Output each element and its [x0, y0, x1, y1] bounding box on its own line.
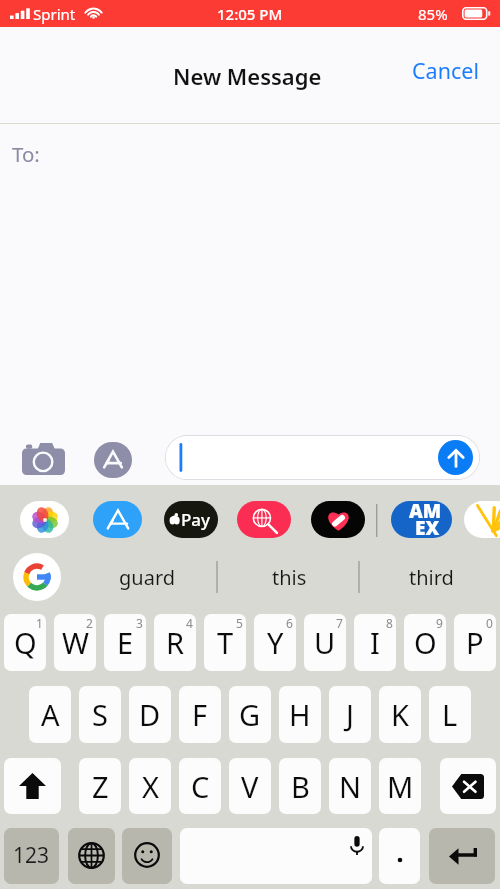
- staticText: E: [117, 623, 134, 662]
- staticText: guard: [119, 564, 176, 591]
- staticText: 8: [386, 615, 393, 631]
- button[interactable]: Send: [438, 440, 473, 475]
- button[interactable]: Next keyboard: [68, 828, 115, 884]
- button[interactable]: Backspace: [440, 758, 496, 814]
- button[interactable]: Cancel: [392, 49, 500, 95]
- staticText: 7: [336, 615, 343, 631]
- button[interactable]: L: [429, 686, 471, 743]
- button[interactable]: U: [304, 614, 346, 671]
- staticText: Q: [14, 623, 37, 662]
- button[interactable]: M: [379, 758, 421, 814]
- button[interactable]: K: [379, 686, 421, 743]
- button[interactable]: P: [454, 614, 496, 671]
- staticText: 4: [186, 615, 193, 631]
- staticText: 123: [13, 841, 50, 870]
- button[interactable]: Z: [79, 758, 121, 814]
- button[interactable]: G: [229, 686, 271, 743]
- button[interactable]: Take photo: [13, 435, 75, 480]
- staticText: EX: [415, 515, 440, 541]
- button[interactable]: I: [354, 614, 396, 671]
- staticText: V: [241, 767, 259, 806]
- button[interactable]: R: [154, 614, 196, 671]
- staticText: T: [217, 623, 234, 662]
- button[interactable]: A: [29, 686, 71, 743]
- staticText: 3: [136, 615, 143, 631]
- button[interactable]: B: [279, 758, 321, 814]
- staticText: I: [370, 623, 380, 662]
- button[interactable]: this: [234, 549, 344, 605]
- staticText: B: [291, 767, 310, 806]
- button[interactable]: Shift: [4, 758, 61, 814]
- button[interactable]: Photos: [20, 501, 69, 538]
- button[interactable]: Apple Pay: [164, 501, 218, 538]
- button[interactable]: More apps: [464, 501, 500, 538]
- staticText: 1: [36, 615, 43, 631]
- button[interactable]: W: [54, 614, 96, 671]
- staticText: H: [289, 695, 311, 734]
- button[interactable]: Space: [180, 828, 372, 884]
- button[interactable]: American Express: [391, 501, 452, 538]
- staticText: 5: [236, 615, 243, 631]
- staticText: To:: [12, 140, 40, 168]
- button[interactable]: S: [79, 686, 121, 743]
- button[interactable]: C: [179, 758, 221, 814]
- staticText: D: [139, 695, 161, 734]
- staticText: 12:05 PM: [217, 4, 283, 24]
- staticText: New Message: [173, 61, 322, 91]
- button[interactable]: N: [329, 758, 371, 814]
- button[interactable]: O: [404, 614, 446, 671]
- staticText: 6: [286, 615, 293, 631]
- button[interactable]: Q: [4, 614, 46, 671]
- staticText: P: [466, 623, 484, 662]
- staticText: Y: [267, 623, 284, 662]
- staticText: third: [409, 564, 454, 591]
- button[interactable]: E: [104, 614, 146, 671]
- button[interactable]: F: [179, 686, 221, 743]
- button[interactable]: V: [229, 758, 271, 814]
- button[interactable]: D: [129, 686, 171, 743]
- staticText: F: [192, 695, 208, 734]
- staticText: C: [191, 767, 210, 806]
- staticText: A: [41, 695, 60, 734]
- staticText: 0: [486, 615, 493, 631]
- button[interactable]: Emoji: [122, 828, 172, 884]
- button[interactable]: iMessage text field: [165, 435, 480, 480]
- button[interactable]: To:: [0, 124, 500, 182]
- staticText: M: [387, 767, 414, 806]
- button[interactable]: guard: [92, 549, 202, 605]
- staticText: Cancel: [412, 56, 479, 85]
- staticText: G: [239, 695, 261, 734]
- staticText: Sprint: [33, 4, 76, 24]
- staticText: 9: [436, 615, 443, 631]
- button[interactable]: J: [329, 686, 371, 743]
- button[interactable]: third: [376, 549, 486, 605]
- staticText: X: [142, 767, 159, 806]
- button[interactable]: T: [204, 614, 246, 671]
- staticText: Z: [92, 767, 109, 806]
- button[interactable]: App Store: [93, 501, 142, 538]
- staticText: R: [166, 623, 185, 662]
- button[interactable]: Health: [311, 501, 365, 538]
- button[interactable]: H: [279, 686, 321, 743]
- staticText: L: [442, 695, 458, 734]
- staticText: U: [314, 623, 336, 662]
- staticText: Pay: [181, 508, 211, 531]
- staticText: W: [62, 623, 89, 662]
- staticText: 2: [86, 615, 93, 631]
- staticText: S: [92, 695, 108, 734]
- button[interactable]: X: [129, 758, 171, 814]
- button[interactable]: Return: [429, 828, 495, 884]
- button[interactable]: [379, 828, 420, 884]
- staticText: K: [391, 695, 409, 734]
- staticText: J: [346, 695, 354, 734]
- staticText: AM: [409, 498, 442, 524]
- button[interactable]: Y: [254, 614, 296, 671]
- staticText: this: [272, 564, 307, 591]
- button[interactable]: 123: [4, 828, 59, 884]
- button[interactable]: Search: [237, 501, 291, 538]
- staticText: 85%: [418, 4, 448, 24]
- button[interactable]: Google search: [13, 553, 61, 601]
- staticText: N: [339, 767, 362, 806]
- button[interactable]: App Store: [94, 442, 132, 478]
- staticText: O: [414, 623, 437, 662]
